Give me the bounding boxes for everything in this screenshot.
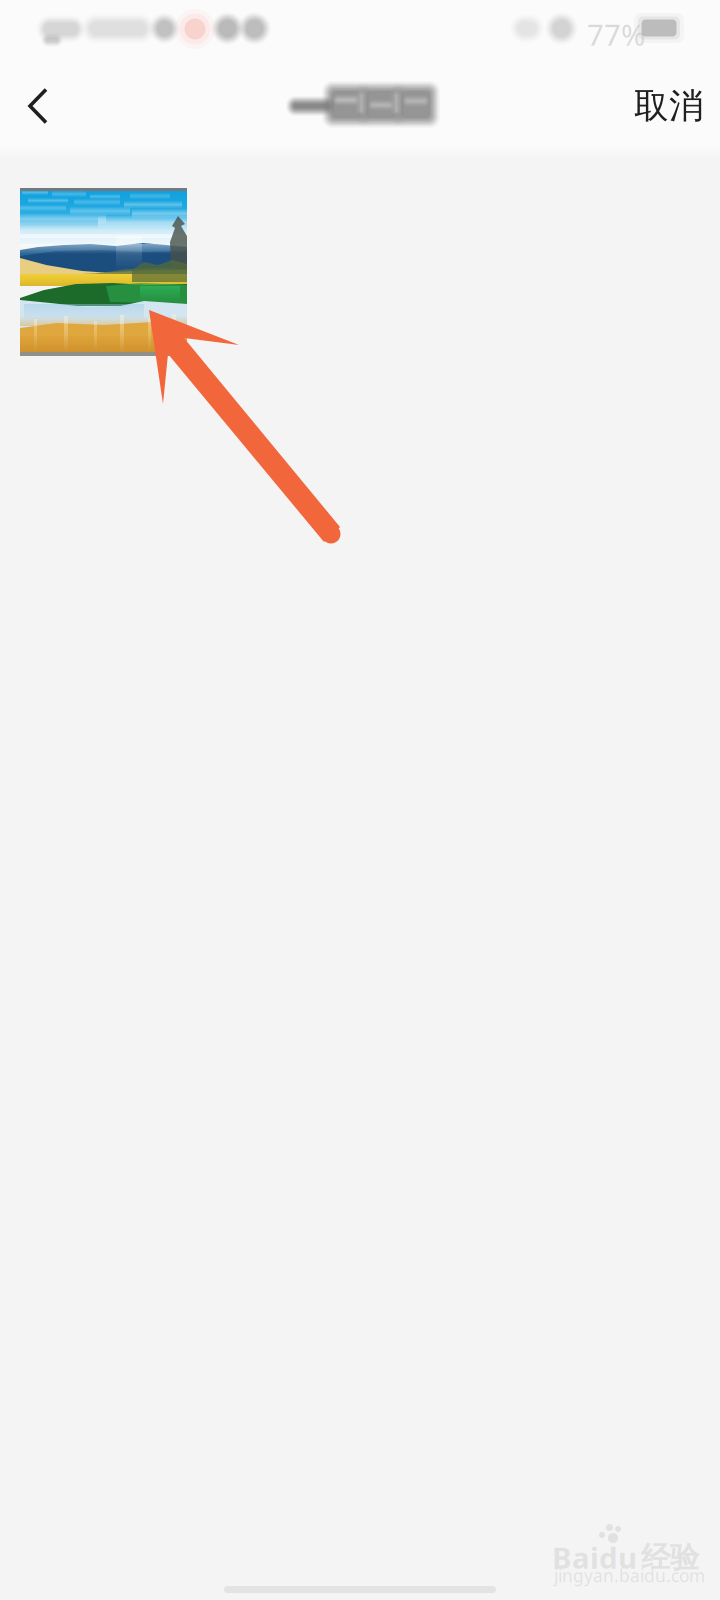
- button[interactable]: Back: [0, 59, 80, 153]
- staticText: Baidu: [552, 1538, 637, 1577]
- button[interactable]: 取消: [617, 59, 720, 153]
- staticText: 取消: [634, 85, 704, 127]
- staticText: jingyan.baidu.com: [554, 1564, 705, 1587]
- staticText: 经验: [641, 1539, 699, 1575]
- button[interactable]: Selected photo: [20, 188, 187, 356]
- staticText: 77%: [587, 15, 645, 54]
